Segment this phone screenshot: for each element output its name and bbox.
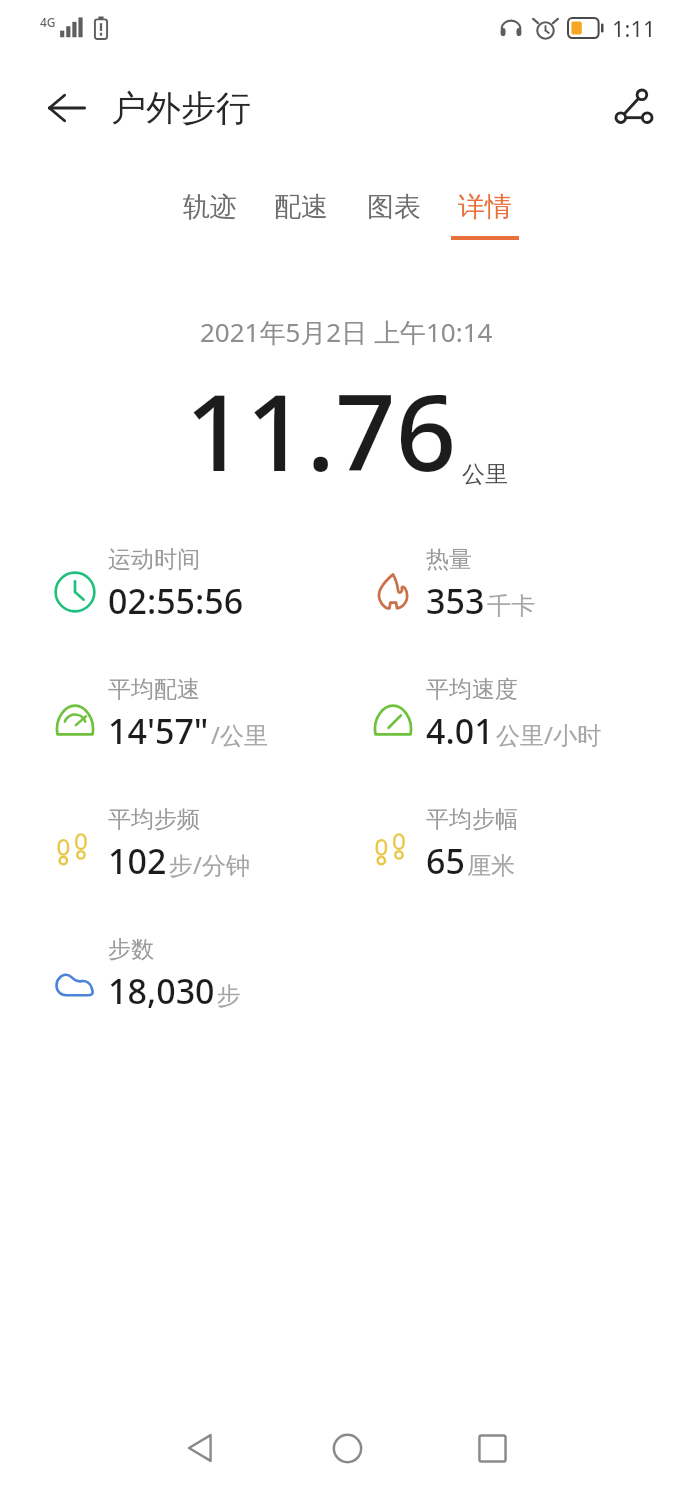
staticText: 02:55:56 xyxy=(108,578,244,624)
button[interactable]: Back xyxy=(34,75,100,141)
staticText: 热量 xyxy=(426,545,472,574)
staticText: 公里 xyxy=(462,460,508,489)
button[interactable]: 详情 xyxy=(451,186,519,262)
button[interactable]: 配速 xyxy=(267,186,335,262)
staticText: 2021年5月2日 上午10:14 xyxy=(200,314,493,350)
staticText: 18,030 xyxy=(108,968,215,1014)
button[interactable]: 平均步频 xyxy=(42,801,360,921)
staticText: 353 xyxy=(426,578,485,624)
button[interactable]: Share xyxy=(601,75,667,141)
staticText: 运动时间 xyxy=(108,545,200,574)
staticText: 14'57" xyxy=(108,708,209,754)
staticText: 4G xyxy=(40,14,56,30)
button[interactable]: 运动时间 xyxy=(42,541,360,661)
staticText: 平均步幅 xyxy=(426,805,518,834)
staticText: 图表 xyxy=(367,190,421,224)
staticText: 步/分钟 xyxy=(169,848,250,881)
button[interactable]: 图表 xyxy=(360,186,428,262)
staticText: 65 xyxy=(426,838,465,884)
staticText: 102 xyxy=(108,838,167,884)
staticText: 11.76 xyxy=(185,358,457,502)
staticText: 4.01 xyxy=(426,708,494,754)
staticText: 平均速度 xyxy=(426,675,518,704)
staticText: /公里 xyxy=(211,718,268,751)
staticText: 平均配速 xyxy=(108,675,200,704)
staticText: 1:11 xyxy=(612,13,656,43)
button[interactable]: Home xyxy=(314,1415,380,1481)
staticText: 公里/小时 xyxy=(496,718,601,751)
button[interactable]: 热量 xyxy=(360,541,660,661)
staticText: 步数 xyxy=(108,935,154,964)
button[interactable]: 平均速度 xyxy=(360,671,660,791)
button[interactable]: Back xyxy=(168,1415,234,1481)
staticText: 配速 xyxy=(274,190,328,224)
staticText: 户外步行 xyxy=(111,86,251,130)
button[interactable]: 平均配速 xyxy=(42,671,360,791)
button[interactable]: Recents xyxy=(459,1415,525,1481)
staticText: 步 xyxy=(217,981,241,1011)
staticText: 轨迹 xyxy=(183,190,237,224)
button[interactable]: 轨迹 xyxy=(176,186,244,262)
button[interactable]: 步数 xyxy=(42,931,360,1051)
staticText: 千卡 xyxy=(487,591,535,621)
staticText: 详情 xyxy=(458,190,512,224)
button[interactable]: 平均步幅 xyxy=(360,801,660,921)
staticText: 平均步频 xyxy=(108,805,200,834)
staticText: 厘米 xyxy=(467,851,515,881)
